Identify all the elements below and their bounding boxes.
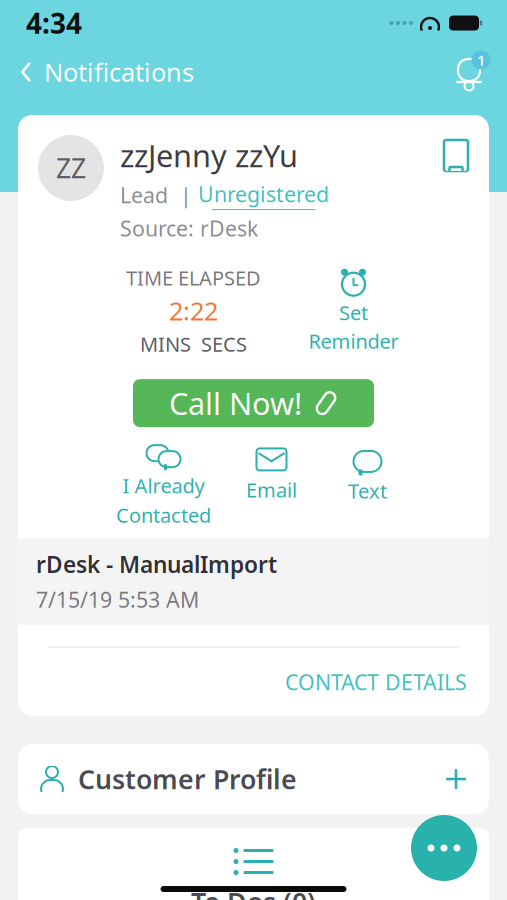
button[interactable]: I Already <box>103 443 223 528</box>
button[interactable]: Unregistered <box>198 180 329 210</box>
staticText: Lead | <box>120 181 192 209</box>
staticText: Email <box>246 476 297 503</box>
staticText: 4:34 <box>26 4 82 42</box>
staticText: Unregistered <box>198 180 329 208</box>
button[interactable]: Call Now! <box>133 379 374 427</box>
staticText: Set <box>339 299 368 326</box>
staticText: Call Now! <box>169 383 302 423</box>
button[interactable]: Text <box>319 448 415 523</box>
button[interactable]: Email <box>223 447 319 524</box>
staticText: To Dos (0) <box>191 884 316 900</box>
staticText: I Already <box>122 472 204 499</box>
staticText: zzJenny zzYu <box>120 135 298 176</box>
button[interactable]: Notifications <box>431 46 507 98</box>
button[interactable]: To Dos (0) <box>18 828 489 900</box>
button[interactable]: Notifications <box>0 46 214 98</box>
button[interactable]: Set <box>293 267 413 354</box>
staticText: MINS SECS <box>140 331 247 357</box>
button[interactable]: Bookmark <box>443 135 469 172</box>
staticText: Notifications <box>44 55 194 89</box>
staticText: Text <box>348 477 387 504</box>
staticText: 2:22 <box>169 294 218 327</box>
staticText: ZZ <box>56 150 86 186</box>
staticText: CONTACT DETAILS <box>285 668 467 696</box>
staticText: Source: rDesk <box>120 214 258 242</box>
button[interactable]: More actions <box>411 815 477 881</box>
button[interactable]: CONTACT DETAILS <box>263 656 489 708</box>
button[interactable]: Customer Profile <box>18 744 489 814</box>
staticText: 7/15/19 5:53 AM <box>36 585 199 614</box>
staticText: Reminder <box>308 328 398 354</box>
staticText: Customer Profile <box>78 761 297 797</box>
staticText: rDesk - ManualImport <box>36 549 277 579</box>
staticText: Contacted <box>116 502 211 528</box>
staticText: 1 <box>477 50 485 70</box>
staticText: TIME ELAPSED <box>126 264 261 291</box>
